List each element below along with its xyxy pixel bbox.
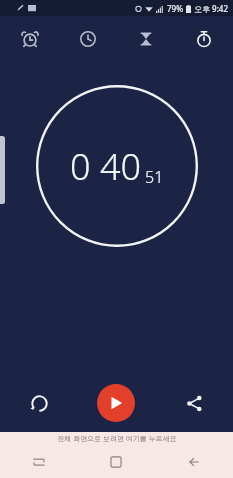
button[interactable]: Share xyxy=(175,384,213,422)
button[interactable]: Back xyxy=(155,446,233,478)
button[interactable]: 전체 화면으로 보려면 여기를 누르세요 xyxy=(0,432,233,446)
button[interactable]: Alarm xyxy=(0,16,59,61)
staticText: 전체 화면으로 보려면 여기를 누르세요 xyxy=(57,434,177,444)
button[interactable]: Reset xyxy=(20,384,58,422)
button[interactable]: Start xyxy=(97,384,135,422)
button[interactable]: Timer xyxy=(117,16,175,61)
button[interactable]: Home xyxy=(77,446,155,478)
button[interactable]: Recents xyxy=(0,446,77,478)
staticText: 51 xyxy=(145,166,164,188)
button[interactable]: Stopwatch xyxy=(175,16,233,61)
button[interactable]: World clock xyxy=(59,16,117,61)
staticText: 0 40 xyxy=(70,142,142,191)
staticText: 79% xyxy=(167,3,183,14)
staticText: 오후 9:42 xyxy=(194,3,228,14)
